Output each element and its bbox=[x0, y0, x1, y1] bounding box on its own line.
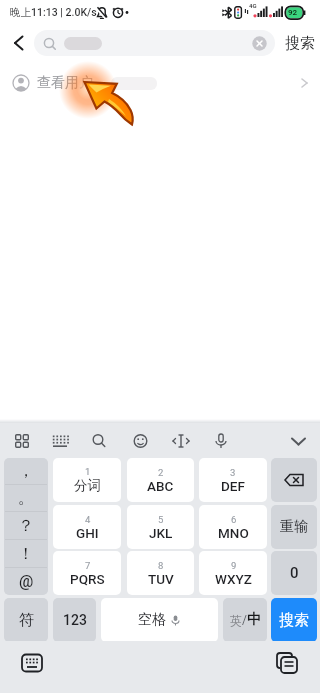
staticText: @ bbox=[19, 572, 34, 591]
button[interactable]: 搜索 bbox=[271, 598, 317, 642]
staticText: 9 bbox=[231, 560, 237, 571]
staticText: 查看用户 bbox=[37, 74, 93, 92]
staticText: 8 bbox=[158, 560, 164, 571]
button[interactable]: 2 bbox=[127, 458, 194, 502]
staticText: 重输 bbox=[280, 518, 308, 536]
button[interactable]: 7 bbox=[53, 551, 121, 595]
staticText: 92 bbox=[288, 8, 298, 17]
staticText: 4 bbox=[85, 514, 91, 525]
staticText: 5 bbox=[158, 514, 164, 525]
staticText: 中 bbox=[247, 611, 261, 629]
staticText: DEF bbox=[221, 478, 245, 494]
staticText: / bbox=[242, 613, 247, 627]
button[interactable]: 5 bbox=[127, 505, 194, 549]
button[interactable]: 查看用户 bbox=[12, 62, 310, 104]
button[interactable]: 9 bbox=[199, 551, 267, 595]
button[interactable]: 3 bbox=[199, 458, 267, 502]
button[interactable]: 4 bbox=[53, 505, 121, 549]
button[interactable]: 1 bbox=[53, 458, 121, 502]
staticText: ， bbox=[18, 461, 34, 481]
staticText: 搜索 bbox=[279, 611, 309, 630]
staticText: JKL bbox=[149, 525, 173, 541]
staticText: ABC bbox=[147, 478, 174, 494]
staticText: 0 bbox=[290, 564, 299, 582]
staticText: GHI bbox=[76, 525, 99, 541]
staticText: MNO bbox=[218, 525, 249, 541]
button[interactable] bbox=[21, 652, 43, 674]
button[interactable]: 6 bbox=[199, 505, 267, 549]
button[interactable]: 8 bbox=[127, 551, 194, 595]
button[interactable] bbox=[271, 458, 317, 502]
staticText: 。 bbox=[18, 488, 34, 508]
button[interactable]: 0 bbox=[271, 551, 317, 595]
staticText: ！ bbox=[18, 544, 34, 564]
staticText: ？ bbox=[18, 516, 34, 536]
staticText: TUV bbox=[148, 571, 174, 587]
button[interactable]: 空格 bbox=[101, 598, 218, 642]
button[interactable]: 搜索 bbox=[285, 34, 315, 53]
staticText: WXYZ bbox=[215, 571, 252, 587]
staticText: PQRS bbox=[70, 571, 105, 587]
staticText: 英 bbox=[230, 613, 242, 628]
button[interactable] bbox=[10, 34, 28, 52]
button[interactable]: ， bbox=[4, 458, 48, 595]
staticText: 123 bbox=[63, 612, 87, 628]
staticText: 符 bbox=[19, 611, 34, 630]
button[interactable]: 123 bbox=[53, 598, 96, 642]
button[interactable]: 符 bbox=[4, 598, 48, 642]
button[interactable]: 重输 bbox=[271, 505, 317, 549]
staticText: 空格 bbox=[138, 611, 166, 629]
button[interactable]: 英 bbox=[223, 598, 267, 642]
staticText: 1 bbox=[85, 466, 91, 477]
button[interactable] bbox=[275, 651, 299, 675]
staticText: 3 bbox=[230, 467, 236, 478]
staticText: 晚上11:13 | 2.0K/s bbox=[10, 6, 97, 19]
button[interactable] bbox=[34, 30, 275, 56]
staticText: 6 bbox=[231, 514, 237, 525]
staticText: 2 bbox=[158, 467, 164, 478]
staticText: 分词 bbox=[74, 477, 101, 494]
staticText: 搜索 bbox=[285, 34, 315, 53]
staticText: 4G bbox=[249, 2, 257, 9]
staticText: 7 bbox=[85, 560, 91, 571]
